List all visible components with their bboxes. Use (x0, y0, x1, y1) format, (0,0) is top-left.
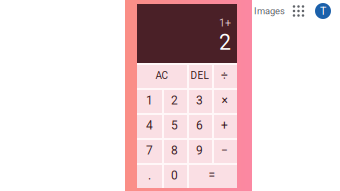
button[interactable]: DEL (187, 63, 212, 88)
staticText: + (221, 118, 228, 133)
button[interactable]: + (212, 113, 237, 138)
staticText: 8 (171, 143, 178, 158)
button[interactable]: 4 (137, 113, 162, 138)
button[interactable]: × (212, 88, 237, 113)
button[interactable]: 9 (187, 138, 212, 163)
staticText: 1+ (219, 16, 231, 29)
staticText: Images (254, 5, 285, 16)
staticText: 7 (146, 143, 153, 158)
button[interactable]: 0 (162, 163, 187, 188)
staticText: 2 (171, 93, 178, 108)
button[interactable]: Google Account (315, 0, 331, 22)
button[interactable]: 2 (162, 88, 187, 113)
button[interactable]: Images (254, 0, 285, 22)
button[interactable]: 6 (187, 113, 212, 138)
button[interactable]: 8 (162, 138, 187, 163)
button[interactable]: Google apps (293, 0, 304, 22)
button[interactable]: 7 (137, 138, 162, 163)
button[interactable]: = (187, 163, 237, 188)
button[interactable]: . (137, 163, 162, 188)
button[interactable]: 5 (162, 113, 187, 138)
staticText: 3 (196, 93, 203, 108)
staticText: 5 (171, 118, 178, 133)
staticText: ÷ (221, 68, 228, 83)
staticText: = (208, 168, 215, 183)
staticText: × (221, 93, 227, 108)
staticText: 1 (146, 93, 153, 108)
staticText: − (221, 143, 228, 158)
button[interactable]: AC (137, 63, 187, 88)
button[interactable]: ÷ (212, 63, 237, 88)
staticText: DEL (190, 70, 208, 81)
button[interactable]: 1 (137, 88, 162, 113)
staticText: T (320, 5, 326, 17)
staticText: 4 (146, 118, 153, 133)
staticText: AC (155, 70, 168, 81)
button[interactable]: − (212, 138, 237, 163)
button[interactable]: 3 (187, 88, 212, 113)
staticText: 2 (219, 30, 231, 55)
staticText: 6 (196, 118, 203, 133)
staticText: 0 (171, 168, 178, 183)
staticText: . (148, 168, 151, 183)
staticText: 9 (196, 143, 203, 158)
